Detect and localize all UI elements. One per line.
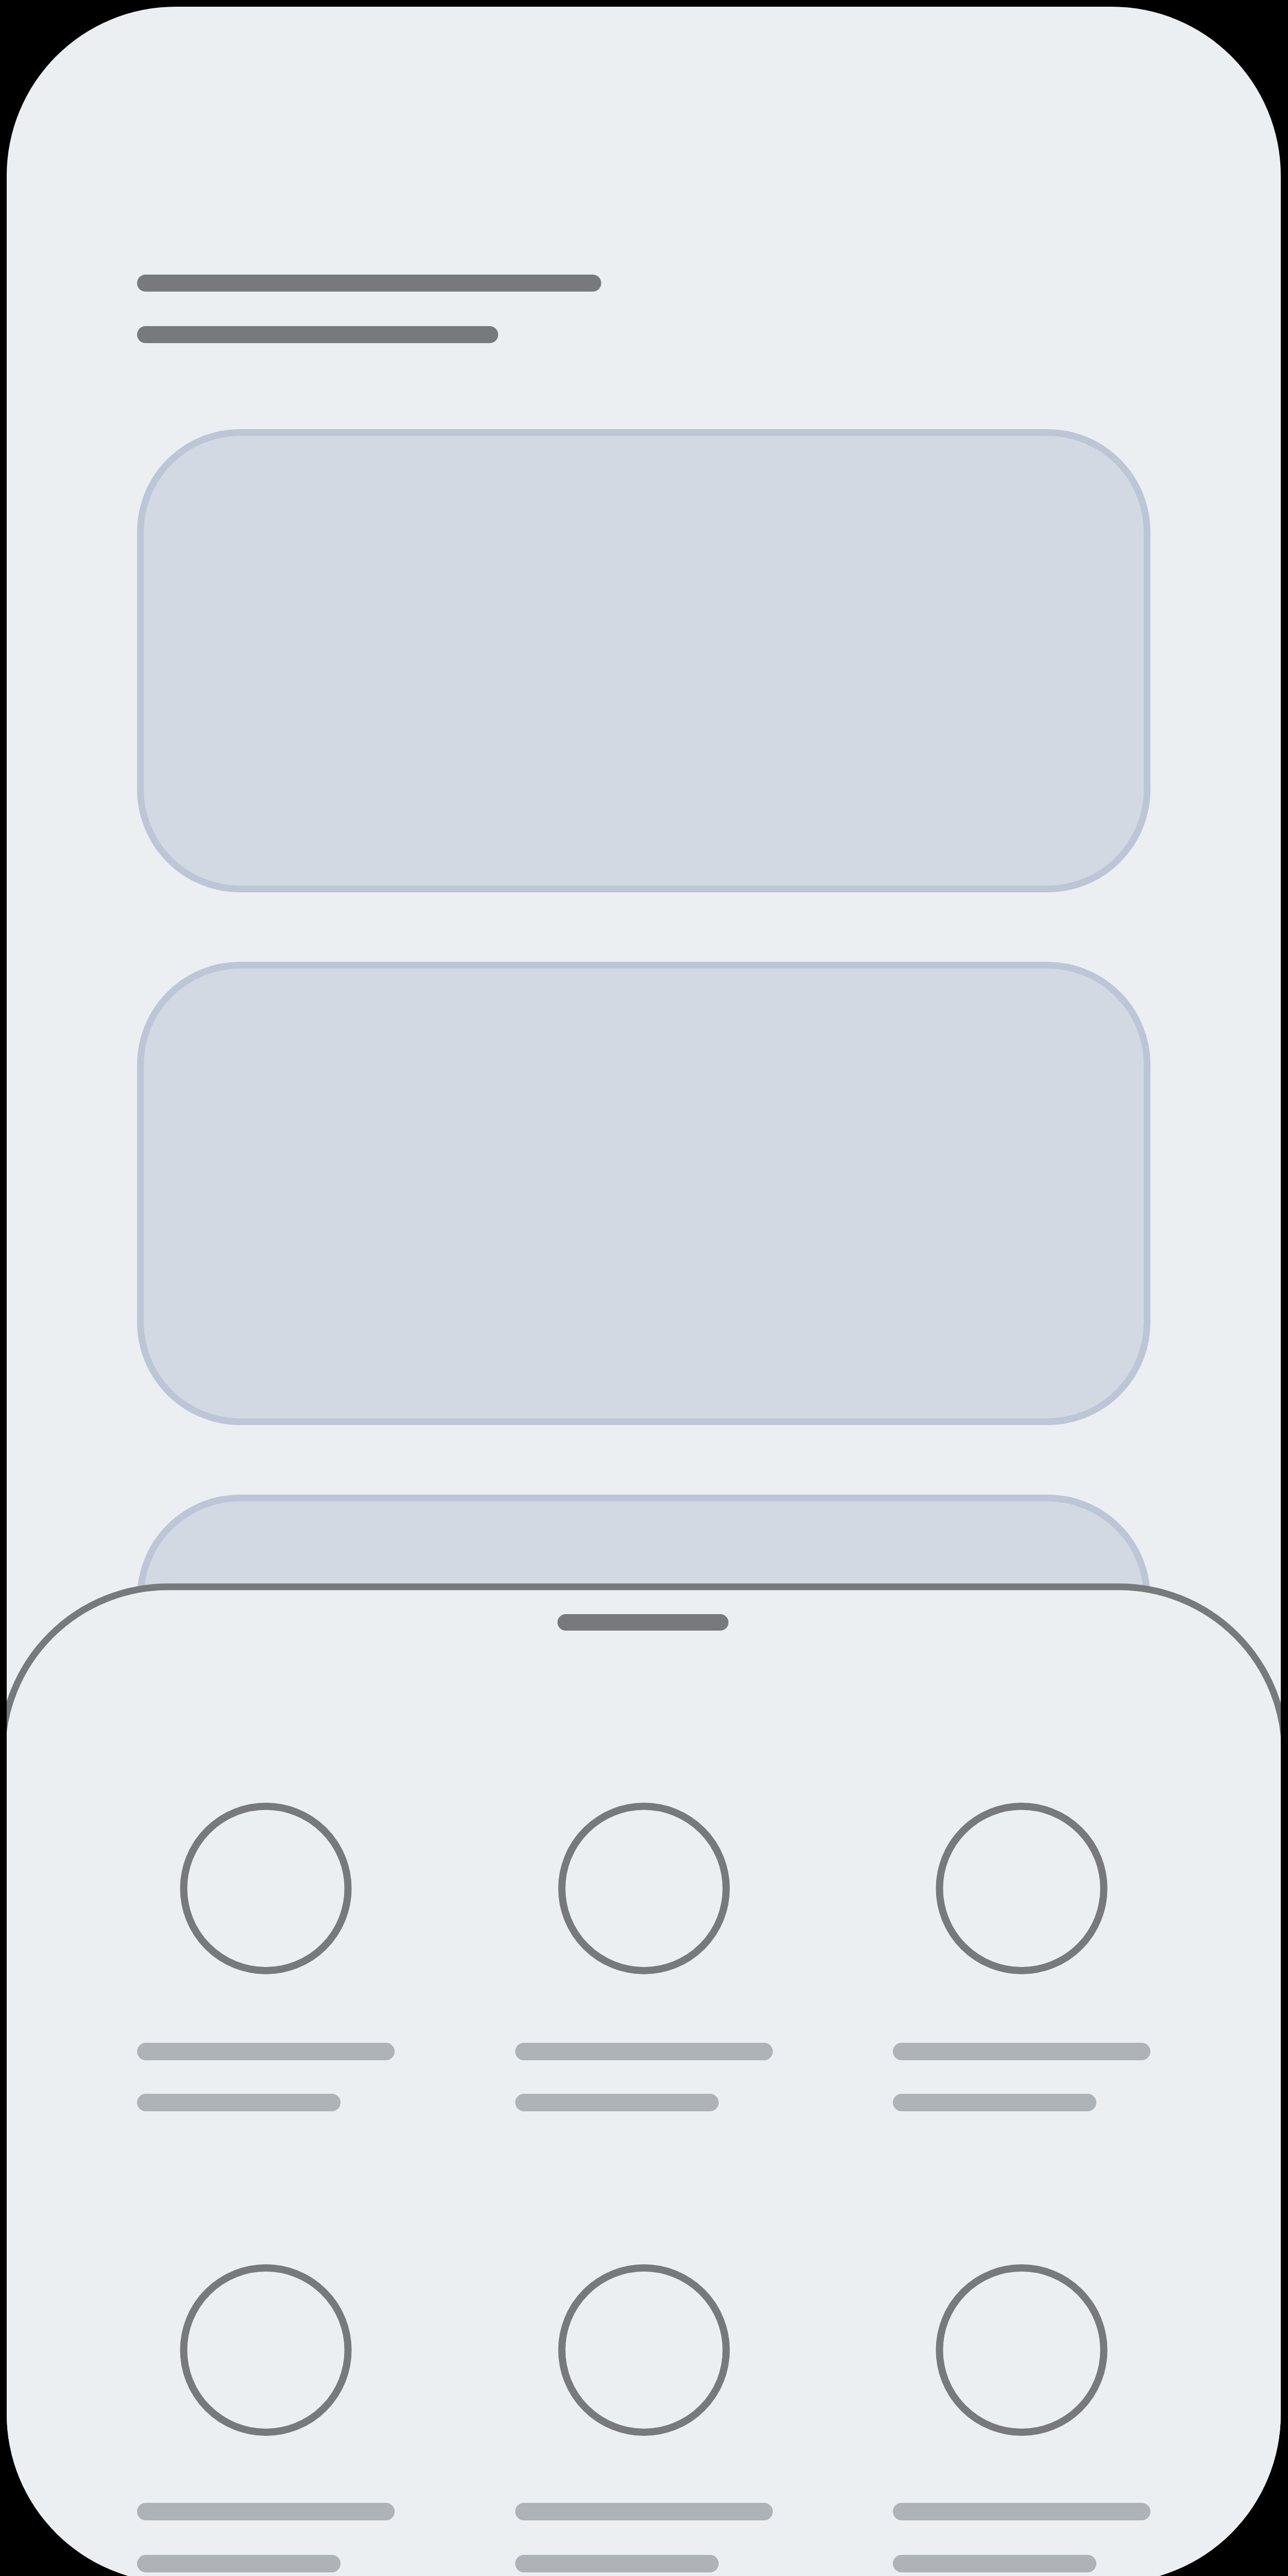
button[interactable]: Save [893, 1803, 1150, 2111]
button[interactable]: Open item [137, 429, 1150, 892]
button[interactable]: Add to album [515, 2264, 773, 2572]
button[interactable]: Drag handle [557, 1614, 728, 1631]
button[interactable]: Open item [137, 1495, 1150, 1958]
button[interactable]: More [893, 2264, 1150, 2572]
button[interactable]: Edit [137, 2264, 395, 2572]
button[interactable]: Copy link [515, 1803, 773, 2111]
button[interactable]: Share [137, 1803, 395, 2111]
button[interactable]: Open item [137, 962, 1150, 1425]
